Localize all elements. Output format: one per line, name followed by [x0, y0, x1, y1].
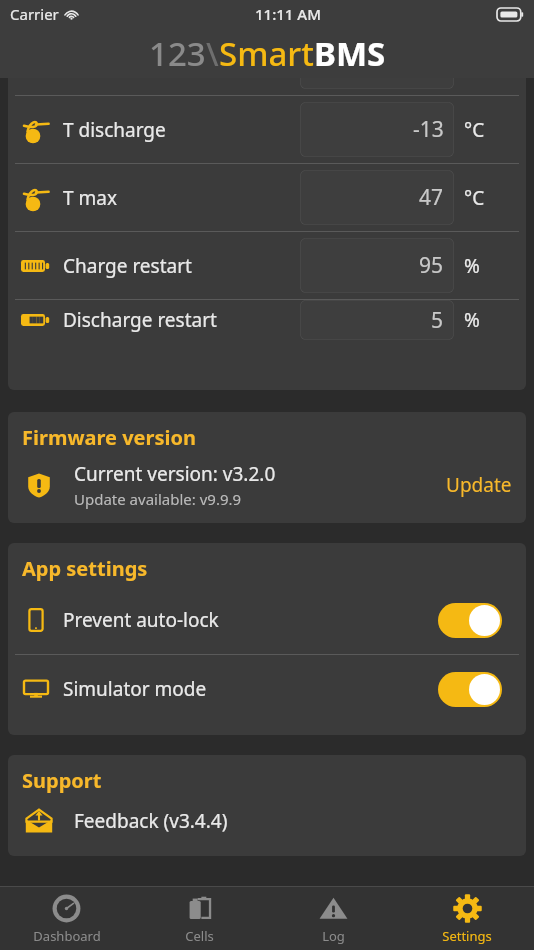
button[interactable]: Feedback (v3.4.4) — [8, 798, 526, 856]
staticText: Update — [446, 472, 512, 498]
button[interactable]: T discharge — [8, 96, 526, 163]
button[interactable]: Charge restart — [8, 232, 526, 299]
button[interactable]: Discharge restart — [8, 300, 526, 340]
staticText: °C — [464, 185, 485, 211]
staticText: Prevent auto-lock — [63, 607, 438, 633]
staticText: App settings — [22, 555, 148, 582]
button[interactable]: Prevent auto-lock — [8, 586, 526, 654]
staticText: Support — [22, 767, 102, 794]
button[interactable]: Toggle Prevent auto-lock — [438, 603, 502, 638]
staticText: % — [464, 307, 480, 333]
staticText: Firmware version — [22, 424, 196, 451]
staticText: -13 — [413, 115, 444, 144]
staticText: Update available: v9.9.9 — [74, 489, 242, 509]
staticText: T discharge — [63, 117, 300, 143]
staticText: 47 — [419, 183, 444, 212]
button[interactable]: Settings — [400, 887, 534, 950]
button[interactable]: T max — [8, 164, 526, 231]
button[interactable]: Cells — [133, 887, 266, 950]
staticText: °C — [464, 117, 485, 143]
staticText: 11:11 AM — [255, 4, 321, 24]
staticText: T max — [63, 185, 300, 211]
staticText: Charge restart — [63, 253, 300, 279]
staticText: Settings — [442, 927, 492, 945]
staticText: Simulator mode — [63, 676, 438, 702]
staticText: Smart — [219, 31, 314, 76]
staticText: Dashboard — [33, 927, 101, 945]
button[interactable]: Current version: v3.2.0 — [8, 455, 526, 523]
button[interactable]: Dashboard — [0, 887, 133, 950]
staticText: Feedback (v3.4.4) — [74, 808, 228, 834]
staticText: % — [464, 253, 480, 279]
staticText: \ — [206, 31, 219, 76]
button[interactable]: Log — [266, 887, 400, 950]
button[interactable]: Simulator mode — [8, 655, 526, 723]
button[interactable]: Toggle Simulator mode — [438, 672, 502, 707]
staticText: Discharge restart — [63, 307, 300, 333]
staticText: BMS — [314, 31, 386, 76]
staticText: Current version: v3.2.0 — [74, 461, 276, 487]
staticText: 123 — [149, 31, 206, 76]
staticText: 95 — [419, 251, 444, 280]
staticText: Cells — [185, 927, 214, 945]
staticText: Carrier — [10, 4, 59, 24]
staticText: Log — [322, 927, 345, 945]
staticText: 5 — [431, 306, 444, 335]
